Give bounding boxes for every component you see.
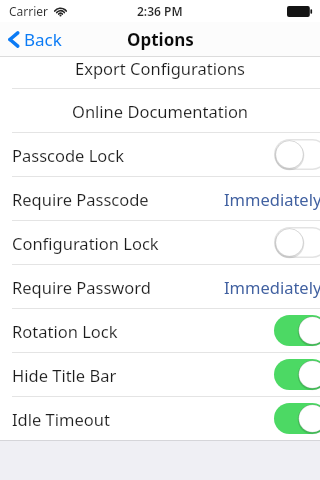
button[interactable]: Idle Timeout	[0, 397, 320, 440]
staticText: Immediately	[224, 188, 320, 210]
staticText: Export Configurations	[75, 57, 246, 79]
button[interactable]: Require Passcode	[0, 177, 320, 220]
staticText: Immediately	[224, 276, 320, 298]
button[interactable]: On	[274, 315, 320, 346]
button[interactable]: On	[274, 359, 320, 390]
button[interactable]: Rotation Lock	[0, 309, 320, 352]
staticText: 2:36 PM	[137, 3, 183, 19]
staticText: Require Passcode	[12, 188, 222, 210]
staticText: Passcode Lock	[12, 144, 266, 166]
staticText: Hide Title Bar	[12, 364, 266, 386]
button[interactable]: Passcode Lock	[0, 133, 320, 176]
button[interactable]: Configuration Lock	[0, 221, 320, 264]
button[interactable]: Off	[274, 139, 320, 170]
button[interactable]: Require Password	[0, 265, 320, 308]
staticText: Require Password	[12, 276, 222, 298]
staticText: Online Documentation	[72, 100, 249, 122]
button[interactable]: On	[274, 403, 320, 434]
other: Back	[8, 31, 19, 48]
button[interactable]: Hide Title Bar	[0, 353, 320, 396]
button[interactable]: Export Configurations	[0, 57, 320, 88]
staticText: Carrier	[9, 3, 49, 19]
staticText: Idle Timeout	[12, 408, 266, 430]
staticText: Options	[127, 28, 194, 51]
button[interactable]: Back	[0, 23, 74, 56]
staticText: Rotation Lock	[12, 320, 266, 342]
staticText: Back	[24, 28, 62, 51]
staticText: Configuration Lock	[12, 232, 266, 254]
button[interactable]: Online Documentation	[0, 89, 320, 132]
button[interactable]: Off	[274, 227, 320, 258]
